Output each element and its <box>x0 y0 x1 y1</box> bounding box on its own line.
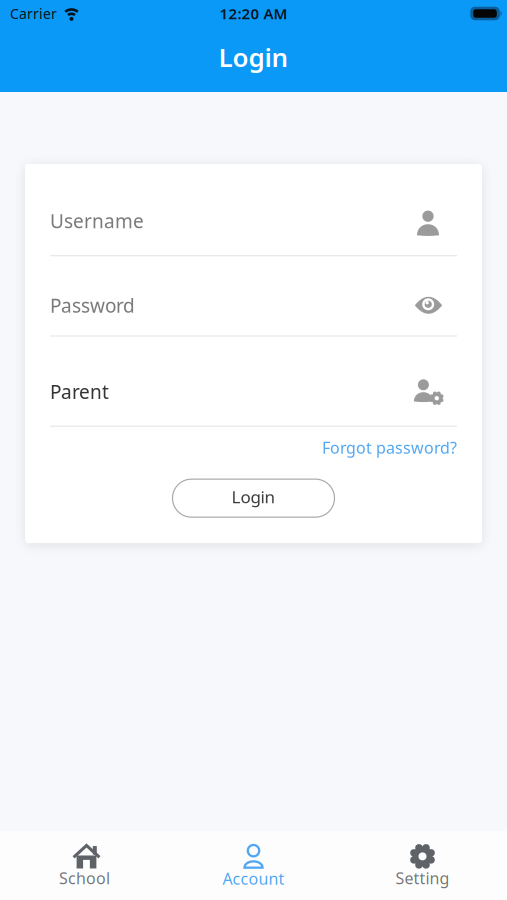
staticText: Account <box>222 868 284 889</box>
button[interactable]: School <box>0 842 169 889</box>
staticText: School <box>59 867 110 889</box>
staticText: 12:20 AM <box>219 3 287 23</box>
button[interactable]: Forgot password? <box>322 437 457 458</box>
staticText: Parent <box>50 379 109 404</box>
button[interactable]: Password <box>50 291 457 337</box>
staticText: Carrier <box>10 4 57 23</box>
staticText: Login <box>218 40 288 74</box>
staticText: Login <box>231 485 275 508</box>
staticText: Setting <box>395 867 449 889</box>
button[interactable]: Account type, Parent <box>50 377 457 427</box>
button[interactable]: Username <box>50 206 457 256</box>
staticText: Forgot password? <box>322 437 457 458</box>
button[interactable]: Setting <box>338 842 507 889</box>
staticText: Password <box>50 293 135 318</box>
button[interactable]: Login <box>172 479 334 517</box>
staticText: Username <box>50 208 144 234</box>
button[interactable]: Account <box>169 842 338 889</box>
